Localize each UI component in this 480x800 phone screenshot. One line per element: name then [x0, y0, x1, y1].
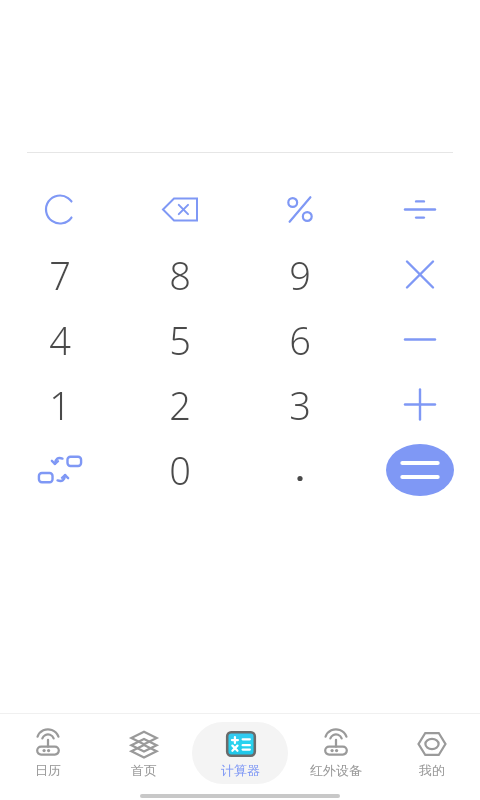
staticText: 0 [169, 444, 191, 496]
button[interactable]: Swap units [0, 437, 120, 502]
button[interactable]: Divide [360, 177, 480, 242]
button[interactable]: Plus [360, 372, 480, 437]
button[interactable]: 日历 [0, 714, 96, 792]
button[interactable]: Clear [0, 177, 120, 242]
staticText: 3 [289, 379, 311, 431]
button[interactable]: 计算器 [192, 714, 288, 792]
button[interactable]: Equals [360, 437, 480, 502]
button[interactable]: 2 [120, 372, 240, 437]
button[interactable]: 首页 [96, 714, 192, 792]
staticText: 我的 [419, 762, 445, 778]
button[interactable]: 6 [240, 307, 360, 372]
button[interactable]: 9 [240, 242, 360, 307]
button[interactable]: 8 [120, 242, 240, 307]
staticText: 7 [49, 249, 71, 301]
button[interactable]: 7 [0, 242, 120, 307]
staticText: 红外设备 [310, 762, 362, 778]
button[interactable]: 0 [120, 437, 240, 502]
button[interactable]: 1 [0, 372, 120, 437]
button[interactable]: Backspace [120, 177, 240, 242]
button[interactable]: 红外设备 [288, 714, 384, 792]
staticText: 2 [169, 379, 191, 431]
staticText: 4 [49, 314, 71, 366]
button[interactable]: 5 [120, 307, 240, 372]
button[interactable]: 我的 [384, 714, 480, 792]
staticText: 1 [49, 379, 71, 431]
button[interactable]: Percent [240, 177, 360, 242]
staticText: 6 [289, 314, 311, 366]
button[interactable]: 4 [0, 307, 120, 372]
staticText: 日历 [35, 762, 61, 778]
staticText: 9 [289, 249, 311, 301]
staticText: 8 [169, 249, 191, 301]
staticText: 计算器 [221, 762, 260, 778]
staticText: 首页 [131, 762, 157, 778]
button[interactable]: Multiply [360, 242, 480, 307]
button[interactable] [240, 437, 360, 502]
button[interactable]: Minus [360, 307, 480, 372]
staticText: 5 [169, 314, 191, 366]
button[interactable]: 3 [240, 372, 360, 437]
